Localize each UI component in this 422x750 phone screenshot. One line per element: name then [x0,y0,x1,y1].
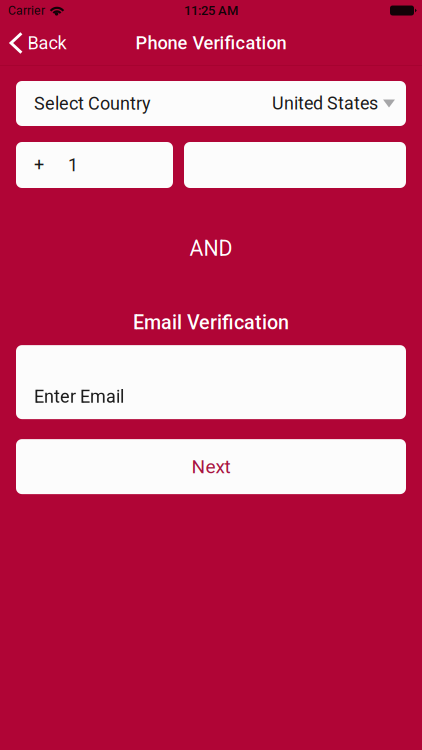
staticText: Enter Email [34,386,124,407]
button[interactable]: Back [0,21,76,65]
staticText: Phone Verification [135,32,286,54]
staticText: Next [191,455,230,478]
button[interactable]: Select Country [16,81,406,126]
staticText: Select Country [34,93,151,114]
button[interactable]: Phone number [184,142,406,188]
button[interactable]: Next [16,439,406,494]
staticText: United States [272,93,378,114]
staticText: Email Verification [133,311,289,334]
staticText: Carrier [8,3,45,18]
button[interactable]: Enter Email [16,345,406,419]
button[interactable]: + [16,142,173,188]
staticText: 1 [68,154,78,176]
staticText: 11:25 AM [184,3,238,18]
staticText: AND [189,236,232,261]
staticText: + [34,154,44,176]
staticText: Back [27,32,66,54]
